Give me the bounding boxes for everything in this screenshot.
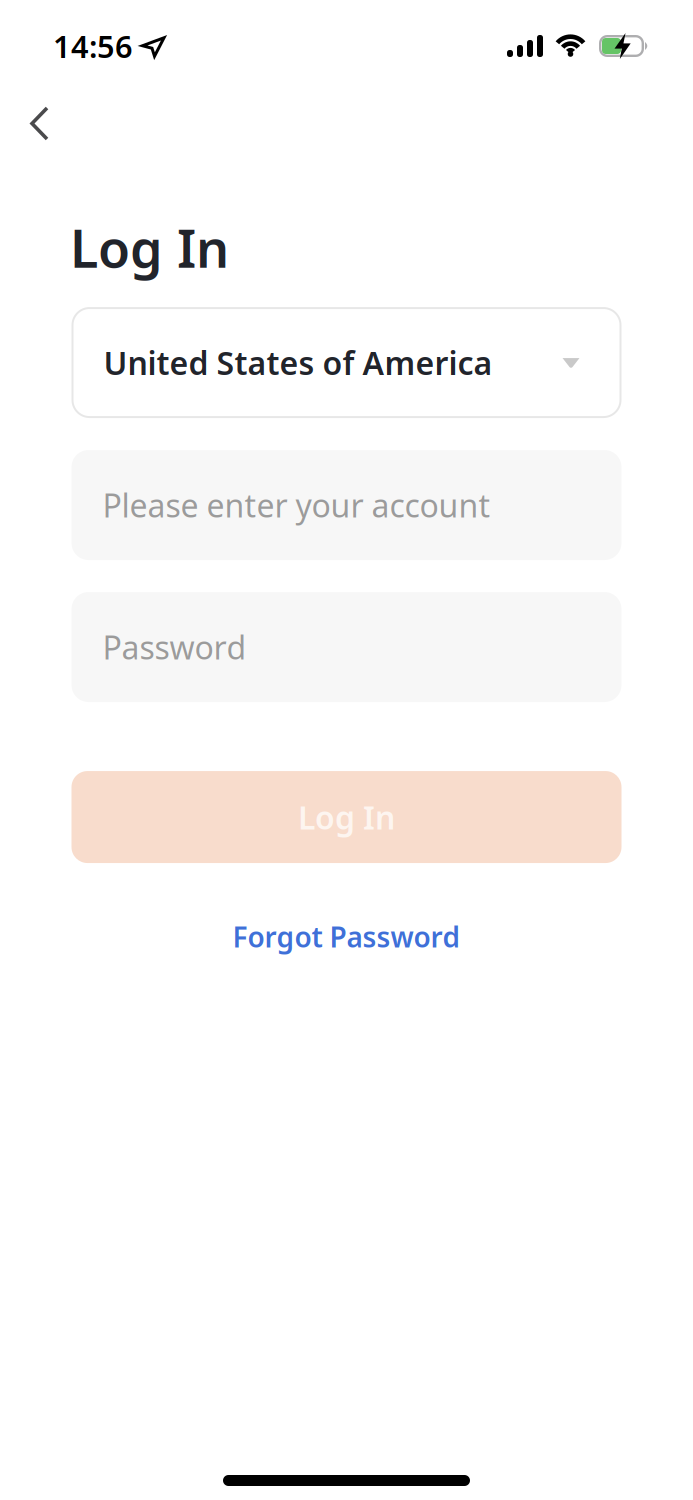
button[interactable]: Log In	[71, 771, 621, 863]
staticText: Forgot Password	[232, 918, 460, 955]
button[interactable]: Back	[0, 96, 79, 151]
staticText: 14:56	[53, 26, 133, 66]
staticText: Log In	[70, 213, 229, 282]
button[interactable]: Please enter your account	[71, 450, 621, 560]
button[interactable]: Forgot Password	[216, 910, 476, 963]
button[interactable]: United States of America	[71, 307, 621, 418]
staticText: Log In	[298, 796, 395, 838]
button[interactable]: Password	[71, 592, 621, 702]
staticText: Password	[102, 626, 246, 668]
staticText: United States of America	[103, 341, 492, 384]
staticText: Please enter your account	[102, 484, 490, 526]
